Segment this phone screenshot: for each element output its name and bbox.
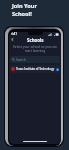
staticText: Join Your [12, 2, 37, 10]
button[interactable]: Texas Institute of Technology [10, 65, 60, 73]
staticText: Schools [27, 37, 44, 42]
staticText: School! [12, 10, 32, 18]
staticText: Select your school so you can start lear… [12, 45, 58, 53]
staticText: Texas Institute of Technology [16, 67, 56, 71]
staticText: 9:41 [11, 32, 17, 36]
staticText: Search [16, 58, 26, 62]
button[interactable]: Back [9, 37, 15, 42]
button[interactable]: Search [10, 56, 60, 63]
